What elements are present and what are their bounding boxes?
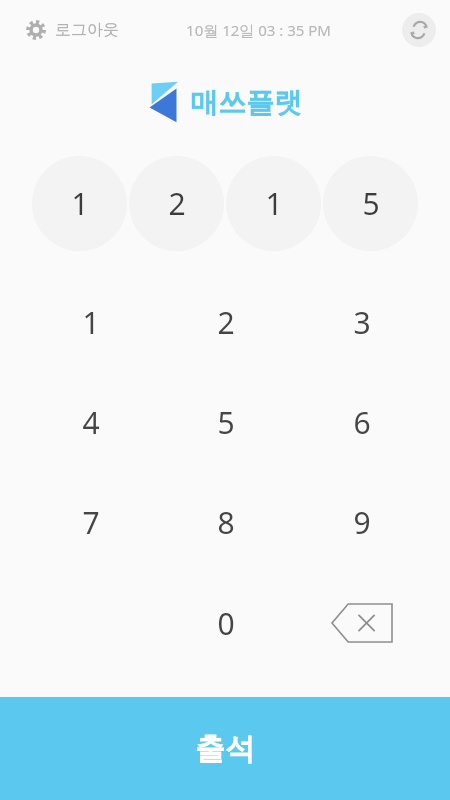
staticText: 5 <box>217 402 235 443</box>
button[interactable]: 7 <box>31 478 151 566</box>
staticText: 0 <box>217 603 235 644</box>
button[interactable]: 출석 <box>0 697 450 800</box>
button[interactable]: 1 <box>31 278 151 366</box>
staticText: 8 <box>217 502 235 543</box>
staticText: 9 <box>353 502 371 543</box>
button[interactable]: 5 <box>166 378 286 466</box>
button[interactable]: 새로고침 <box>402 13 436 47</box>
button[interactable]: 4 <box>31 378 151 466</box>
staticText: 1 <box>82 302 100 343</box>
staticText: 7 <box>82 502 100 543</box>
staticText: 5 <box>362 183 380 224</box>
staticText: 3 <box>353 302 371 343</box>
staticText: 출석 <box>195 730 255 768</box>
staticText: 로그아웃 <box>55 20 119 40</box>
staticText: 6 <box>353 402 371 443</box>
button[interactable]: 지우기 <box>302 579 422 667</box>
button[interactable]: 6 <box>302 378 422 466</box>
button[interactable]: 8 <box>166 478 286 566</box>
button[interactable]: 9 <box>302 478 422 566</box>
button[interactable]: 0 <box>166 579 286 667</box>
staticText: 4 <box>82 402 100 443</box>
staticText: 10월 12일 03 : 35 PM <box>186 20 331 40</box>
button[interactable]: 2 <box>166 278 286 366</box>
staticText: 1 <box>71 183 89 224</box>
staticText: 2 <box>168 183 186 224</box>
staticText: 1 <box>265 183 283 224</box>
button[interactable]: 로그아웃 <box>18 14 127 46</box>
button[interactable]: 3 <box>302 278 422 366</box>
staticText: 2 <box>217 302 235 343</box>
staticText: 매쓰플랫 <box>190 85 302 120</box>
